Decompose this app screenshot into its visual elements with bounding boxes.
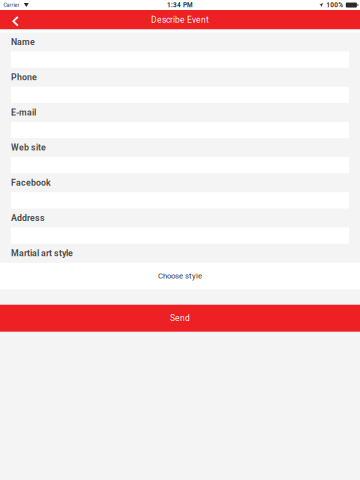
staticText: Facebook (11, 178, 51, 188)
staticText: Name (11, 37, 35, 47)
staticText: 100% (326, 1, 343, 9)
staticText: Address (11, 213, 45, 223)
staticText: Web site (11, 142, 46, 153)
button[interactable]: Choose style (0, 263, 360, 289)
staticText: Choose style (158, 271, 202, 280)
button[interactable]: Send (0, 305, 360, 332)
staticText: Martial art style (11, 248, 73, 258)
staticText: Send (170, 313, 190, 323)
staticText: Phone (11, 72, 37, 82)
staticText: Carrier (3, 2, 19, 8)
staticText: 1:34 PM (167, 1, 193, 9)
button[interactable]: Back (0, 10, 29, 29)
staticText: E-mail (11, 107, 36, 117)
staticText: Describe Event (151, 15, 209, 25)
